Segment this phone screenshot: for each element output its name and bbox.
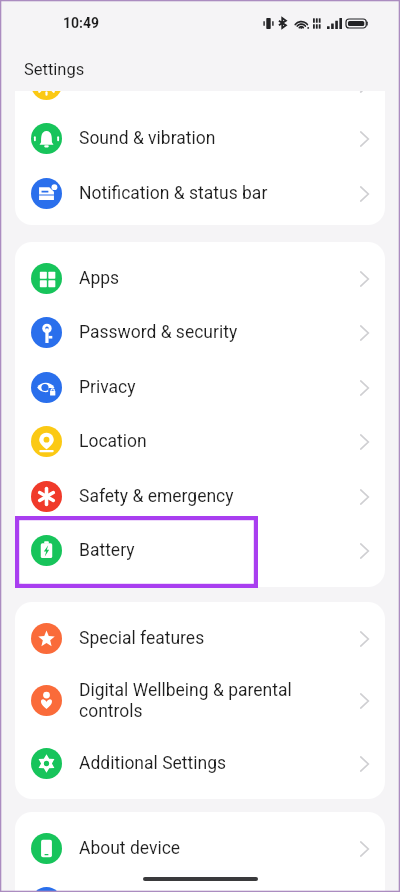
- button[interactable]: Special features: [15, 611, 385, 666]
- button[interactable]: Lock screen: [15, 91, 385, 112]
- staticText: Sound & vibration: [79, 128, 342, 149]
- staticText: About device: [79, 838, 342, 859]
- staticText: Special features: [79, 628, 342, 649]
- staticText: Password & security: [79, 322, 342, 343]
- staticText: Settings: [24, 60, 85, 79]
- button[interactable]: About device: [15, 821, 385, 876]
- button[interactable]: Privacy: [15, 360, 385, 415]
- staticText: Notification & status bar: [79, 183, 342, 204]
- button[interactable]: Location: [15, 414, 385, 469]
- button[interactable]: System apps updater: [15, 875, 385, 892]
- button[interactable]: Safety & emergency: [15, 469, 385, 524]
- staticText: Privacy: [79, 377, 342, 398]
- button[interactable]: Additional Settings: [15, 736, 385, 791]
- button[interactable]: Digital Wellbeing & parental controls: [15, 665, 385, 736]
- button[interactable]: Notification & status bar: [15, 166, 385, 221]
- staticText: Location: [79, 431, 342, 452]
- staticText: Digital Wellbeing & parental controls: [79, 680, 342, 722]
- button[interactable]: Sound & vibration: [15, 111, 385, 166]
- staticText: Additional Settings: [79, 753, 342, 774]
- button[interactable]: Password & security: [15, 305, 385, 360]
- staticText: Battery: [79, 540, 342, 561]
- staticText: Safety & emergency: [79, 486, 342, 507]
- staticText: 10:49: [63, 15, 100, 31]
- button[interactable]: Battery: [15, 523, 385, 578]
- staticText: Apps: [79, 268, 342, 289]
- button[interactable]: Apps: [15, 251, 385, 306]
